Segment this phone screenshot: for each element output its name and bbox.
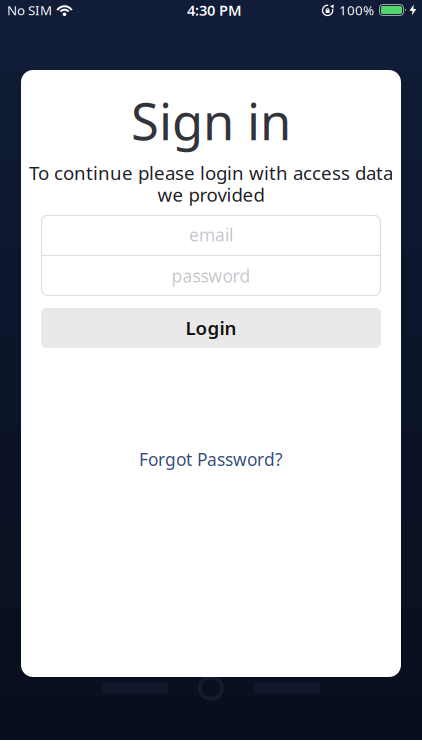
- staticText: Sign in: [131, 87, 291, 154]
- button[interactable]: email: [41, 215, 381, 255]
- staticText: email: [189, 223, 233, 246]
- staticText: 4:30 PM: [187, 0, 242, 20]
- staticText: No SIM: [7, 1, 52, 19]
- staticText: password: [171, 264, 250, 287]
- button[interactable]: Forgot Password?: [139, 448, 283, 471]
- staticText: Login: [185, 315, 236, 340]
- staticText: 100%: [339, 1, 374, 19]
- staticText: To continue please login with access dat…: [29, 160, 393, 185]
- button[interactable]: password: [41, 256, 381, 296]
- staticText: we provided: [157, 182, 264, 207]
- staticText: Forgot Password?: [139, 448, 283, 471]
- button[interactable]: Login: [41, 308, 381, 348]
